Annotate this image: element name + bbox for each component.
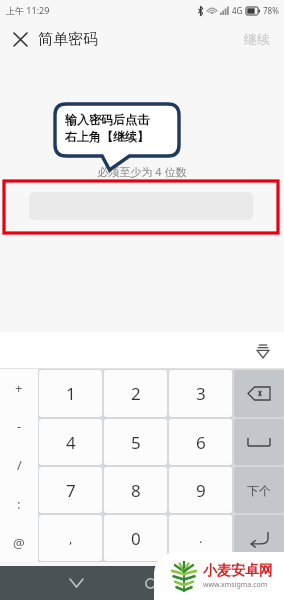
staticText: 9	[196, 479, 206, 502]
staticText: 78%	[263, 5, 279, 16]
staticText: /	[17, 456, 22, 474]
button[interactable]: 2	[104, 370, 167, 417]
button[interactable]: :	[0, 484, 38, 523]
staticText: -	[17, 417, 22, 435]
button[interactable]: 功能键	[234, 467, 284, 513]
button[interactable]: ,	[39, 515, 102, 561]
button[interactable]: 继续	[238, 27, 276, 51]
staticText: 4G	[232, 5, 243, 16]
staticText: 3	[196, 382, 206, 405]
staticText: 下个	[247, 483, 271, 498]
button[interactable]: 1	[39, 370, 102, 417]
staticText: 上午 11:29	[6, 4, 50, 16]
button[interactable]: 4	[39, 419, 102, 465]
staticText: ,	[69, 529, 73, 547]
button[interactable]: 功能键	[234, 419, 284, 465]
staticText: 简单密码	[38, 30, 98, 49]
staticText: 1	[66, 382, 76, 405]
button[interactable]: +	[0, 369, 38, 407]
staticText: 8	[131, 479, 141, 502]
button[interactable]: 9	[169, 467, 232, 513]
staticText: 输入密码后点击	[65, 112, 149, 127]
button[interactable]: 功能键	[234, 515, 284, 561]
staticText: .	[199, 529, 203, 547]
staticText: 6	[196, 431, 206, 454]
button[interactable]: 7	[39, 467, 102, 513]
button[interactable]: 0	[104, 515, 167, 561]
button[interactable]: 8	[104, 467, 167, 513]
staticText: www.xmsigma.com	[203, 580, 268, 590]
button[interactable]: /	[0, 445, 38, 484]
staticText: :	[17, 495, 21, 513]
staticText: 继续	[244, 31, 270, 47]
staticText: 4	[66, 431, 76, 454]
button[interactable]: @	[0, 523, 38, 562]
button[interactable]: 返回	[62, 569, 90, 597]
staticText: 2	[131, 382, 141, 405]
staticText: +	[15, 379, 23, 397]
button[interactable]: -	[0, 407, 38, 445]
button[interactable]: 5	[104, 419, 167, 465]
button[interactable]: .	[169, 515, 232, 561]
button[interactable]: 3	[169, 370, 232, 417]
staticText: 5	[131, 431, 141, 454]
staticText: 必须至少为 4 位数	[97, 164, 187, 179]
staticText: 7	[66, 479, 76, 502]
button[interactable]: 功能键	[234, 370, 284, 417]
staticText: 0	[131, 527, 141, 550]
button[interactable]: 6	[169, 419, 232, 465]
button[interactable]: 主页	[136, 569, 164, 597]
button[interactable]: 关闭	[4, 23, 36, 55]
staticText: @	[13, 534, 25, 552]
staticText: 小麦安卓网	[203, 562, 273, 580]
button[interactable]: 收起键盘	[250, 338, 276, 364]
staticText: 右上角【继续】	[65, 129, 149, 144]
